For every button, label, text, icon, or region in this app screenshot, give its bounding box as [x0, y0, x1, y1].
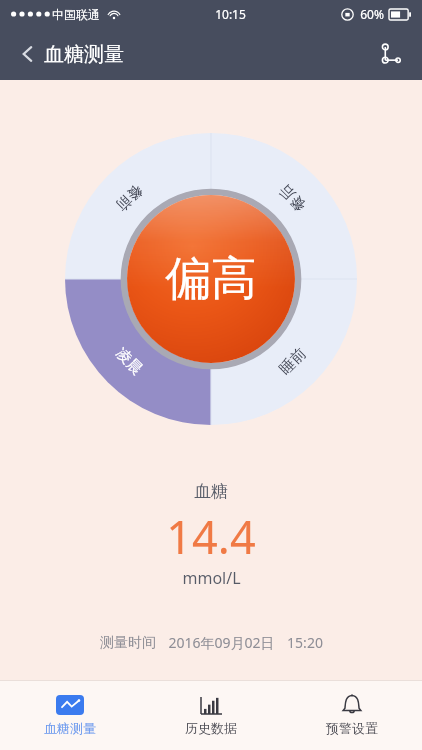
staticText: 历史数据	[185, 720, 237, 736]
staticText: 预警设置	[326, 720, 378, 736]
button[interactable]: 历史数据	[140, 680, 281, 750]
staticText: 中国联通	[52, 7, 100, 22]
staticText: 餐前	[112, 180, 146, 215]
staticText: 睡前	[276, 344, 310, 379]
staticText: 10:15	[215, 6, 246, 22]
staticText: 偏高	[165, 250, 257, 308]
staticText: 餐后	[276, 180, 310, 215]
button[interactable]: Back	[6, 32, 50, 76]
staticText: 血糖测量	[44, 42, 124, 67]
staticText: 15:20	[287, 633, 323, 652]
staticText: 2016年09月02日	[168, 633, 275, 652]
button[interactable]: Share	[368, 31, 414, 77]
staticText: 血糖测量	[44, 720, 96, 736]
staticText: 测量时间	[100, 634, 156, 652]
staticText: 血糖	[194, 481, 228, 502]
staticText: 凌晨	[112, 344, 146, 379]
button[interactable]: 预警设置	[281, 680, 422, 750]
staticText: 60%	[360, 6, 384, 22]
staticText: mmol/L	[182, 567, 241, 589]
staticText: 14.4	[166, 506, 256, 567]
button[interactable]: 血糖测量	[0, 680, 140, 750]
